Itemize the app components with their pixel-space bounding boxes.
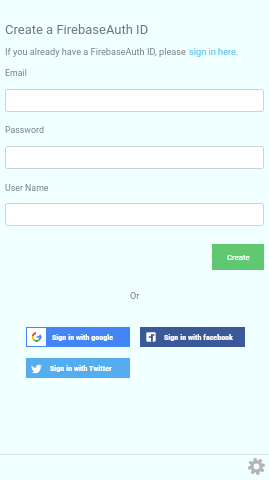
staticText: Or xyxy=(130,290,140,301)
staticText: User Name xyxy=(5,183,49,193)
staticText: Password xyxy=(5,125,44,135)
button[interactable] xyxy=(5,89,264,112)
button[interactable]: Sign in with google xyxy=(26,327,130,347)
button[interactable]: Create xyxy=(212,244,264,270)
staticText: Create a FirebaseAuth ID xyxy=(5,22,149,37)
button[interactable]: sign in here. xyxy=(189,46,239,57)
staticText: Sign in with Twitter xyxy=(50,364,112,373)
staticText: If you already have a FirebaseAuth ID, p… xyxy=(5,46,189,57)
button[interactable] xyxy=(5,203,264,226)
button[interactable]: Sign in with facebook xyxy=(140,327,245,347)
staticText: Create xyxy=(227,253,250,262)
button[interactable] xyxy=(5,146,264,169)
staticText: Email xyxy=(5,68,27,78)
staticText: Sign in with google xyxy=(52,333,114,342)
staticText: Sign in with facebook xyxy=(164,333,233,342)
button[interactable]: Settings xyxy=(248,458,265,475)
button[interactable]: Sign in with Twitter xyxy=(26,358,130,378)
